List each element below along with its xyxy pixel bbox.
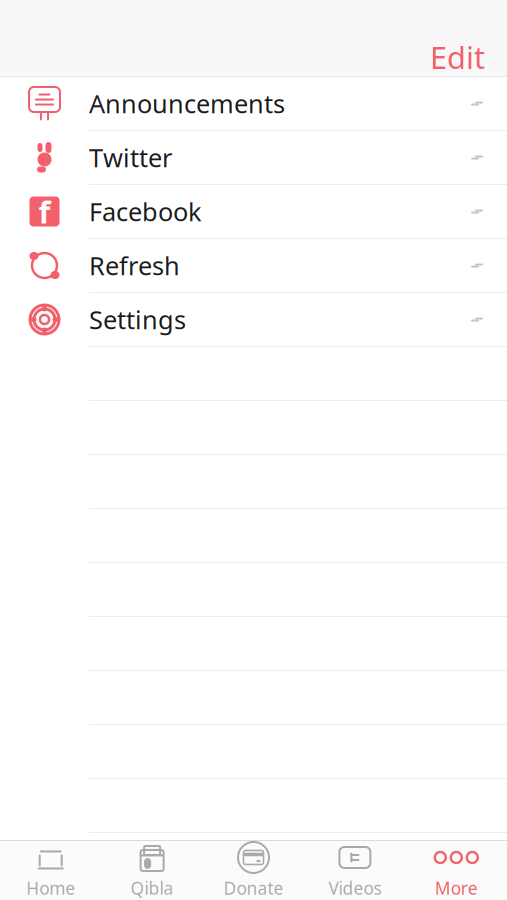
button[interactable]: Edit — [430, 31, 507, 83]
staticText: Twitter — [89, 141, 172, 174]
staticText: Refresh — [89, 249, 180, 282]
button[interactable]: Videos — [304, 841, 406, 900]
button[interactable]: More — [406, 841, 507, 900]
staticText: Home — [26, 876, 75, 899]
staticText: Edit — [430, 37, 485, 77]
button[interactable]: Twitter — [0, 131, 507, 185]
staticText: Facebook — [89, 195, 202, 228]
button[interactable]: Donate — [203, 841, 304, 900]
button[interactable]: Qibla — [101, 841, 203, 900]
staticText: Qibla — [131, 876, 174, 899]
staticText: Donate — [223, 876, 283, 899]
button[interactable]: Announcements — [0, 77, 507, 131]
button[interactable]: Refresh — [0, 239, 507, 293]
button[interactable]: Settings — [0, 293, 507, 347]
button[interactable]: f — [0, 185, 507, 239]
staticText: f — [38, 191, 50, 232]
staticText: Announcements — [89, 87, 285, 120]
staticText: Settings — [89, 303, 186, 336]
staticText: Videos — [328, 876, 381, 899]
button[interactable]: Home — [0, 841, 101, 900]
staticText: More — [435, 876, 478, 899]
